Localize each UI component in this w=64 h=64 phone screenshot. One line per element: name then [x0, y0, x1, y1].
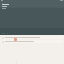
- button[interactable]: Back: [1, 2, 3, 4]
- button[interactable]: Tab: [31, 61, 33, 63]
- button[interactable]: [1, 36, 63, 39]
- button[interactable]: Tab: [47, 61, 49, 63]
- button[interactable]: Home tab: [15, 61, 17, 63]
- button[interactable]: [1, 40, 63, 43]
- button[interactable]: Create: [14, 38, 17, 41]
